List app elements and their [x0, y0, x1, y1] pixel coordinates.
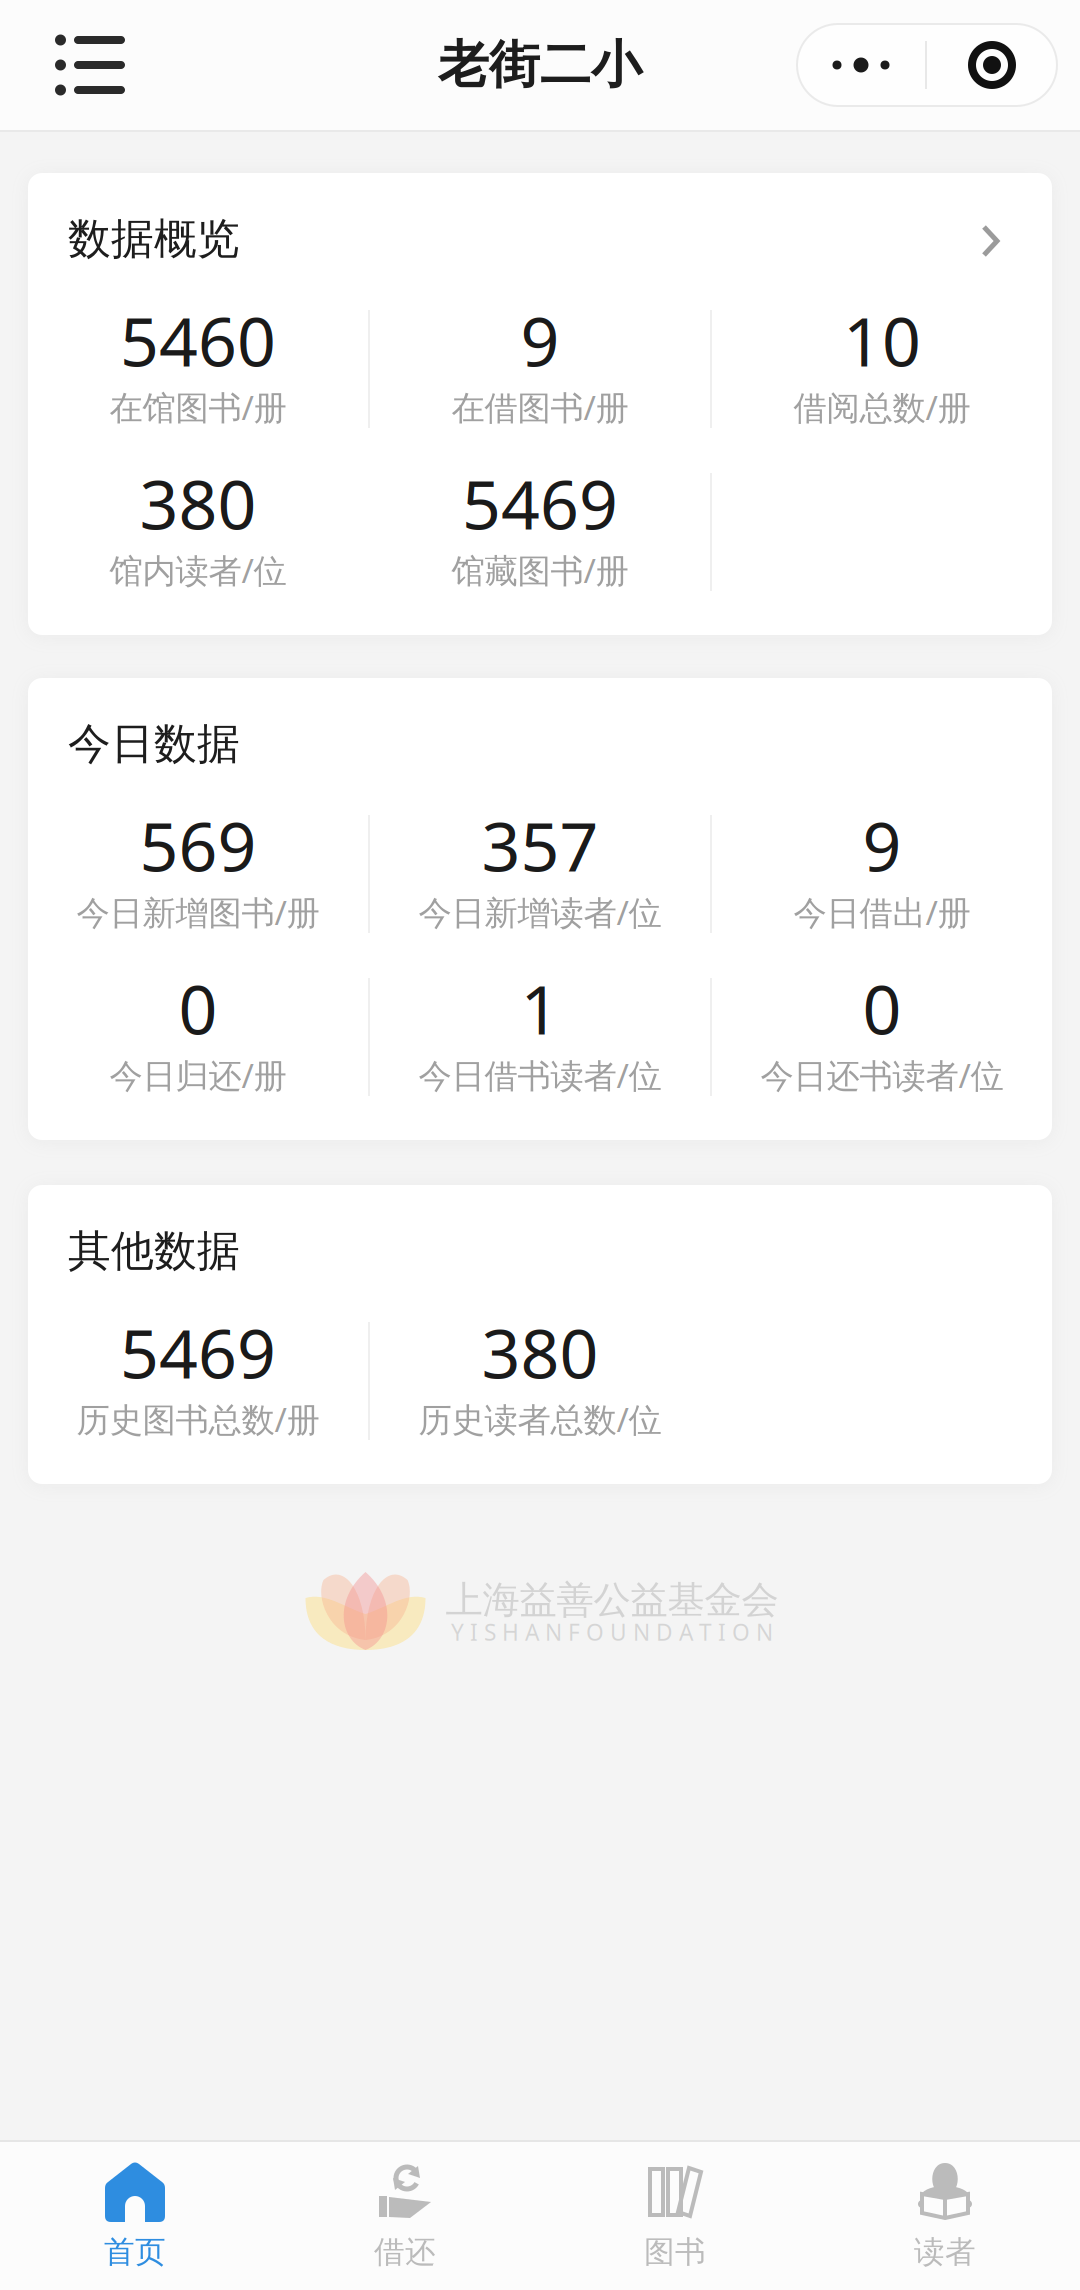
staticText: 1	[520, 963, 559, 1053]
staticText: 今日数据	[68, 718, 240, 770]
staticText: 今日还书读者/位	[760, 1053, 1003, 1097]
staticText: 9	[520, 295, 559, 385]
staticText: 380	[139, 458, 256, 548]
staticText: Y I S H A N F O U N D A T I O N	[451, 1617, 773, 1647]
staticText: 今日新增读者/位	[418, 890, 661, 934]
staticText: 上海益善公益基金会	[445, 1577, 778, 1623]
staticText: 5469	[462, 458, 618, 548]
staticText: 今日归还/册	[109, 1053, 286, 1097]
button[interactable]: More	[797, 0, 1080, 130]
button[interactable]: 数据概览	[28, 219, 1052, 259]
staticText: 0	[178, 963, 217, 1053]
staticText: 今日借出/册	[793, 890, 970, 934]
staticText: 10	[843, 295, 921, 385]
staticText: 读者	[914, 2233, 976, 2271]
staticText: 0	[862, 963, 901, 1053]
staticText: 图书	[644, 2233, 706, 2271]
button[interactable]: 读者	[810, 2142, 1080, 2290]
staticText: 历史读者总数/位	[418, 1397, 661, 1441]
staticText: 357	[481, 800, 598, 890]
staticText: 其他数据	[68, 1225, 240, 1277]
staticText: 老街二小	[438, 34, 642, 96]
staticText: 5469	[120, 1307, 276, 1397]
button[interactable]: Menu	[0, 0, 155, 130]
staticText: 5460	[120, 295, 276, 385]
button[interactable]: 借还	[270, 2142, 540, 2290]
staticText: 首页	[104, 2233, 166, 2271]
staticText: 在借图书/册	[451, 385, 628, 429]
button[interactable]: 图书	[540, 2142, 810, 2290]
staticText: 380	[481, 1307, 598, 1397]
staticText: 借阅总数/册	[793, 385, 970, 429]
staticText: 馆藏图书/册	[451, 548, 628, 592]
staticText: 今日新增图书/册	[76, 890, 319, 934]
staticText: 数据概览	[68, 213, 240, 265]
staticText: 借还	[374, 2233, 436, 2271]
button[interactable]: 首页	[0, 2142, 270, 2290]
staticText: 历史图书总数/册	[76, 1397, 319, 1441]
staticText: 569	[139, 800, 256, 890]
staticText: 9	[862, 800, 901, 890]
staticText: 今日借书读者/位	[418, 1053, 661, 1097]
staticText: 在馆图书/册	[109, 385, 286, 429]
staticText: 馆内读者/位	[109, 548, 286, 592]
